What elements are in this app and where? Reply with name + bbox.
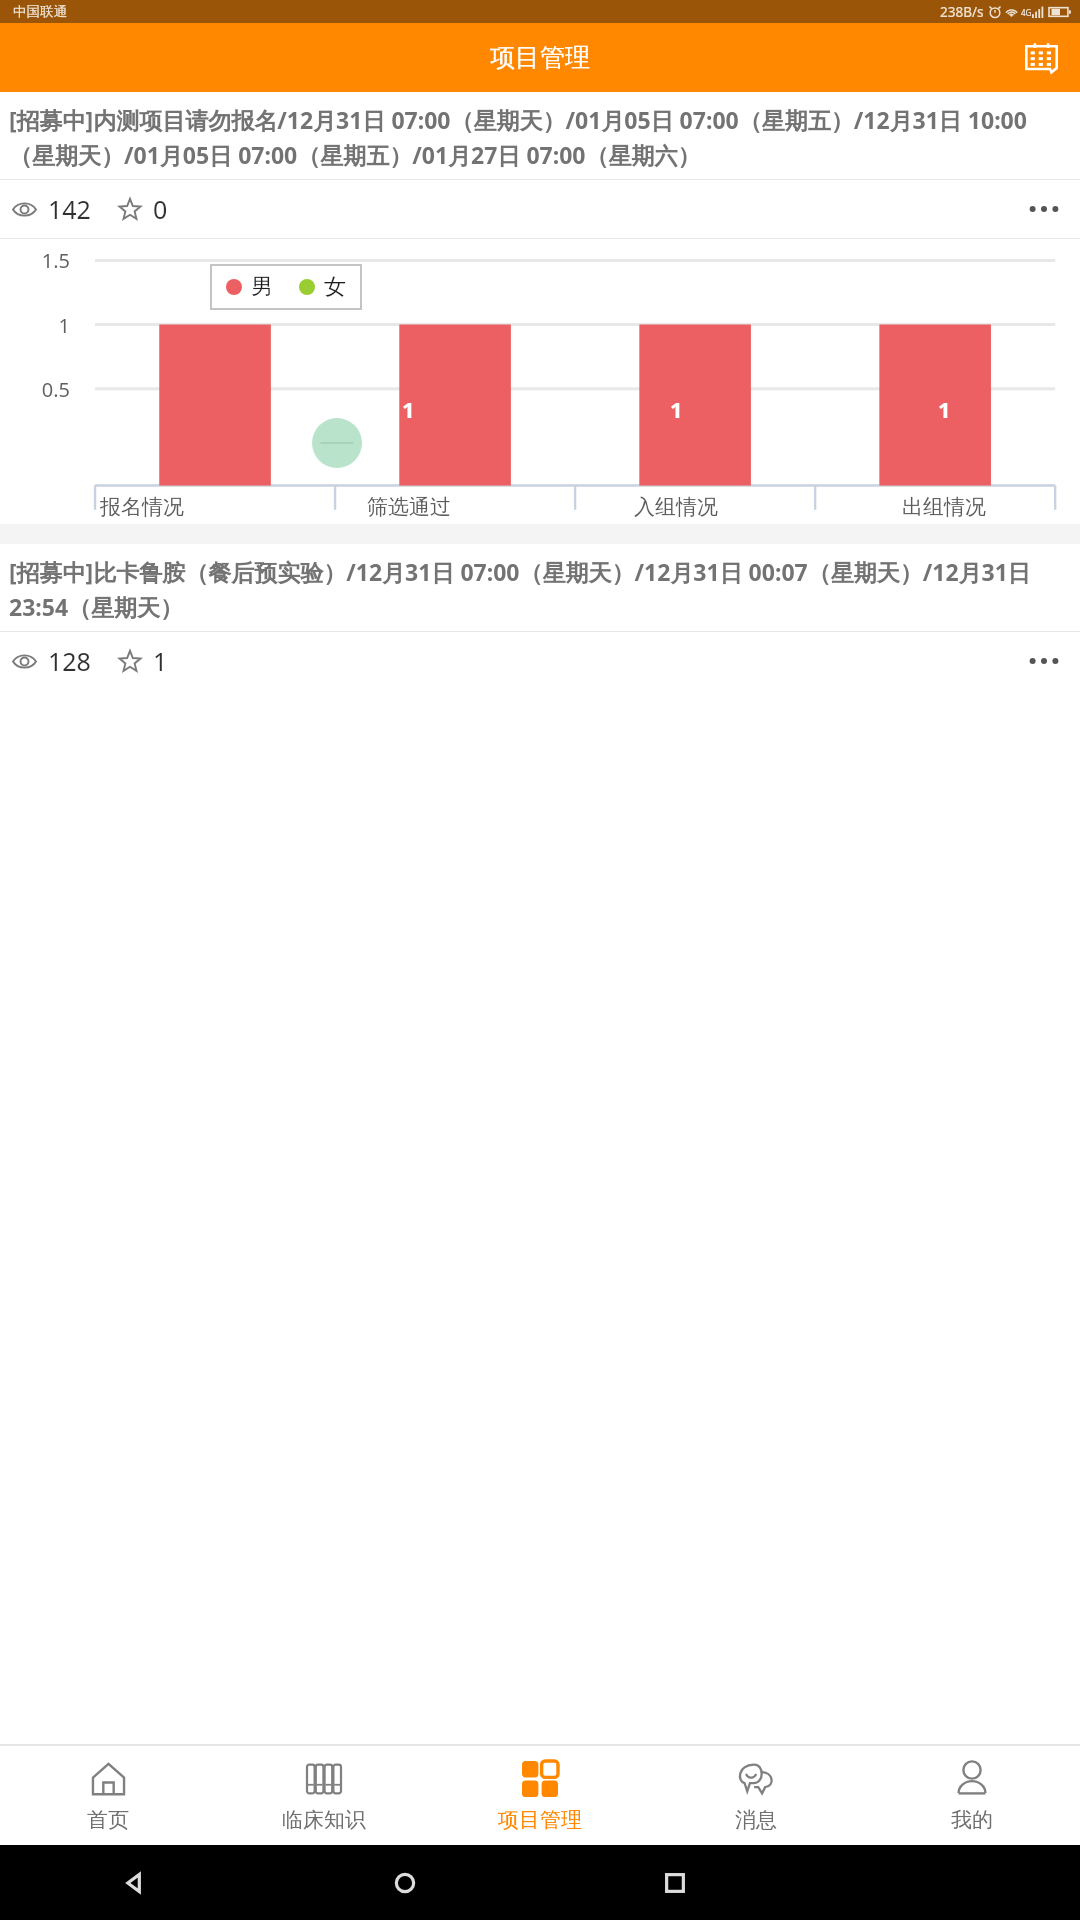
staticText: 首页 bbox=[87, 1807, 129, 1833]
button[interactable]: [招募中]内测项目请勿报名/12月31日 07:00（星期天）/01月05日 0… bbox=[0, 92, 1080, 524]
button[interactable]: 我的 bbox=[864, 1746, 1080, 1845]
staticText: 消息 bbox=[735, 1807, 777, 1833]
staticText: [招募中]比卡鲁胺（餐后预实验）/12月31日 07:00（星期天）/12月31… bbox=[9, 556, 1071, 623]
button[interactable]: 1 bbox=[118, 644, 168, 678]
staticText: 女 bbox=[324, 273, 346, 301]
staticText: 128 bbox=[48, 644, 91, 678]
staticText: 4G bbox=[1021, 7, 1032, 18]
staticText: 中国联通 bbox=[13, 3, 67, 20]
button[interactable]: 项目管理 bbox=[432, 1746, 648, 1845]
button[interactable]: 消息 bbox=[648, 1746, 864, 1845]
staticText: 入组情况 bbox=[634, 494, 718, 520]
staticText: 临床知识 bbox=[282, 1807, 366, 1833]
staticText: 报名情况 bbox=[100, 494, 184, 520]
staticText: 1 bbox=[153, 644, 168, 678]
staticText: 0.5 bbox=[0, 376, 70, 403]
staticText: 男 bbox=[251, 273, 273, 301]
staticText: 1 bbox=[0, 312, 70, 339]
button[interactable]: 临床知识 bbox=[216, 1746, 432, 1845]
staticText: 142 bbox=[48, 192, 91, 226]
staticText: 0 bbox=[153, 192, 168, 226]
button[interactable]: 128 bbox=[12, 644, 91, 678]
button[interactable]: [招募中]比卡鲁胺（餐后预实验）/12月31日 07:00（星期天）/12月31… bbox=[0, 544, 1080, 690]
staticText: 项目管理 bbox=[498, 1807, 582, 1833]
button[interactable]: More options bbox=[1022, 187, 1066, 231]
button[interactable]: Calendar bbox=[1017, 34, 1065, 82]
staticText: 1 bbox=[938, 394, 951, 424]
button[interactable]: 首页 bbox=[0, 1746, 216, 1845]
staticText: 项目管理 bbox=[490, 42, 590, 73]
staticText: 1 bbox=[402, 394, 415, 424]
button[interactable]: More options bbox=[1022, 639, 1066, 683]
staticText: [招募中]内测项目请勿报名/12月31日 07:00（星期天）/01月05日 0… bbox=[9, 104, 1071, 171]
button[interactable]: Add project bbox=[312, 418, 362, 468]
staticText: 出组情况 bbox=[902, 494, 986, 520]
staticText: 1.5 bbox=[0, 247, 70, 274]
staticText: 1 bbox=[670, 394, 683, 424]
button[interactable]: 142 bbox=[12, 192, 91, 226]
staticText: 我的 bbox=[951, 1807, 993, 1833]
staticText: 筛选通过 bbox=[367, 494, 451, 520]
button[interactable]: 0 bbox=[118, 192, 168, 226]
staticText: 238B/s bbox=[940, 3, 984, 21]
